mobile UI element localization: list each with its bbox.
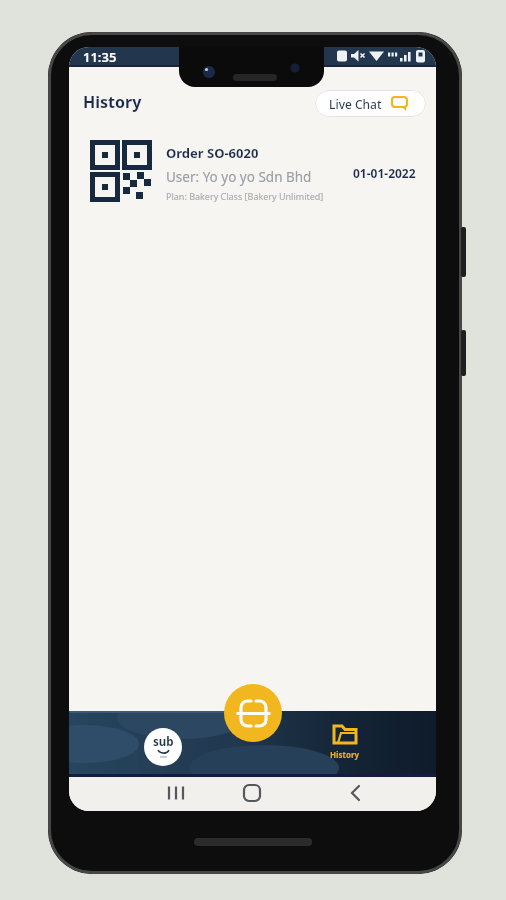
staticText: 01-01-2022 <box>353 165 416 181</box>
button[interactable]: History <box>321 721 369 771</box>
button[interactable]: sub <box>144 728 182 766</box>
staticText: Plan: Bakery Class [Bakery Unlimited] <box>166 190 324 202</box>
staticText: Order SO-6020 <box>166 144 259 162</box>
staticText: 11:35 <box>83 48 117 66</box>
staticText: User: Yo yo yo Sdn Bhd <box>166 168 312 186</box>
button[interactable] <box>224 684 282 742</box>
staticText: Live Chat <box>329 96 382 112</box>
staticText: History <box>330 749 360 760</box>
button[interactable]: Order SO-6020 <box>90 140 426 200</box>
staticText: History <box>83 91 142 113</box>
staticText: sub <box>153 734 174 750</box>
button[interactable]: Live Chat <box>315 90 426 117</box>
